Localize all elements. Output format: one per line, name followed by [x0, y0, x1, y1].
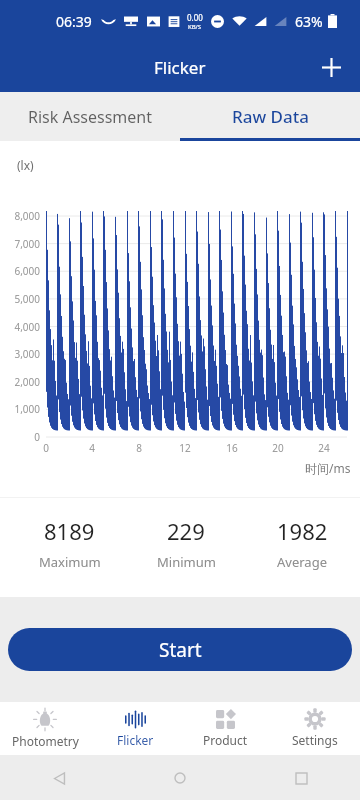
button[interactable]: Back	[44, 763, 74, 793]
staticText: 1982	[277, 516, 328, 546]
staticText: Average	[277, 553, 327, 571]
staticText: 2,000	[0, 375, 40, 389]
staticText: 8	[127, 441, 151, 455]
button[interactable]: Flicker	[90, 702, 180, 755]
button[interactable]: Settings	[270, 702, 360, 755]
staticText: 5,000	[0, 292, 40, 306]
button[interactable]: Product	[180, 702, 270, 755]
staticText: Photometry	[12, 733, 79, 749]
button[interactable]: Start	[8, 628, 352, 671]
staticText: 0.00	[187, 12, 203, 23]
staticText: Flicker	[117, 732, 154, 748]
button[interactable]: Add	[311, 47, 351, 87]
staticText: 6,000	[0, 264, 40, 278]
staticText: 0	[0, 430, 40, 444]
staticText: 20	[266, 441, 290, 455]
button[interactable]: Recents	[286, 763, 316, 793]
staticText: Risk Assessment	[28, 106, 153, 128]
staticText: 229	[167, 516, 205, 546]
staticText: 1,000	[0, 402, 40, 416]
staticText: Start	[159, 637, 202, 663]
staticText: 8,000	[0, 209, 40, 223]
button[interactable]: Photometry	[0, 702, 90, 755]
staticText: Product	[203, 732, 248, 748]
staticText: 7,000	[0, 237, 40, 251]
button[interactable]: Risk Assessment	[0, 92, 180, 141]
staticText: 4	[80, 441, 104, 455]
staticText: Flicker	[154, 56, 206, 79]
staticText: Settings	[292, 732, 338, 748]
staticText: Minimum	[157, 553, 216, 571]
staticText: 0	[34, 441, 58, 455]
staticText: 16	[220, 441, 244, 455]
staticText: Maximum	[39, 553, 101, 571]
button[interactable]: Raw Data	[180, 92, 360, 141]
staticText: KB/S	[188, 23, 202, 31]
staticText: 06:39	[56, 12, 92, 31]
staticText: 8189	[44, 516, 95, 546]
staticText: 12	[173, 441, 197, 455]
staticText: Raw Data	[232, 105, 309, 128]
staticText: (lx)	[17, 157, 34, 173]
staticText: 63%	[295, 12, 323, 31]
button[interactable]: Home	[165, 763, 195, 793]
staticText: 4,000	[0, 320, 40, 334]
staticText: 3,000	[0, 347, 40, 361]
staticText: 24	[312, 441, 336, 455]
staticText: 时间/ms	[305, 460, 351, 476]
